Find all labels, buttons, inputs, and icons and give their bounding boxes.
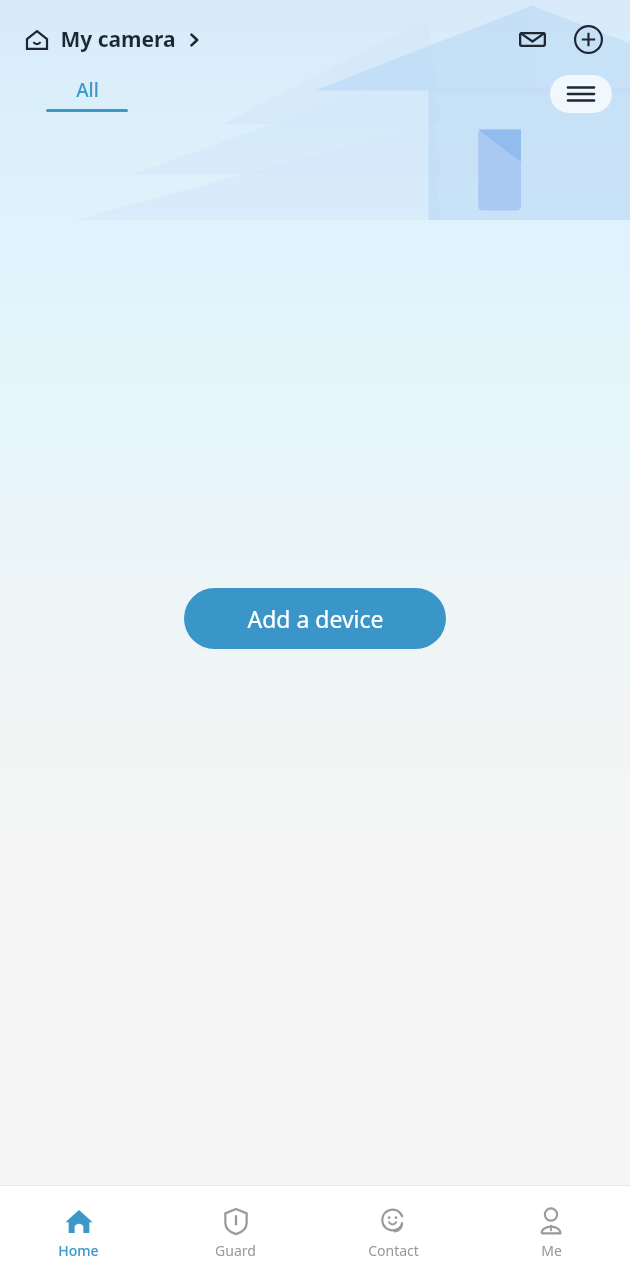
button[interactable]: Messages	[510, 17, 554, 61]
button[interactable]: Contact	[314, 1186, 472, 1280]
button[interactable]: Home	[0, 1186, 157, 1280]
button[interactable]: All	[40, 77, 134, 112]
button[interactable]: Guard	[157, 1186, 314, 1280]
staticText: Me	[541, 1241, 562, 1260]
button[interactable]: Me	[472, 1186, 630, 1280]
button[interactable]: Add device	[566, 17, 610, 61]
button[interactable]: Menu	[550, 75, 612, 113]
button[interactable]: Add a device	[184, 588, 446, 649]
staticText: Contact	[368, 1241, 419, 1260]
staticText: Home	[58, 1241, 99, 1260]
button[interactable]: My camera	[20, 21, 206, 58]
staticText: All	[76, 77, 99, 103]
staticText: My camera	[60, 25, 176, 54]
staticText: Guard	[215, 1241, 256, 1260]
staticText: Add a device	[247, 603, 384, 634]
